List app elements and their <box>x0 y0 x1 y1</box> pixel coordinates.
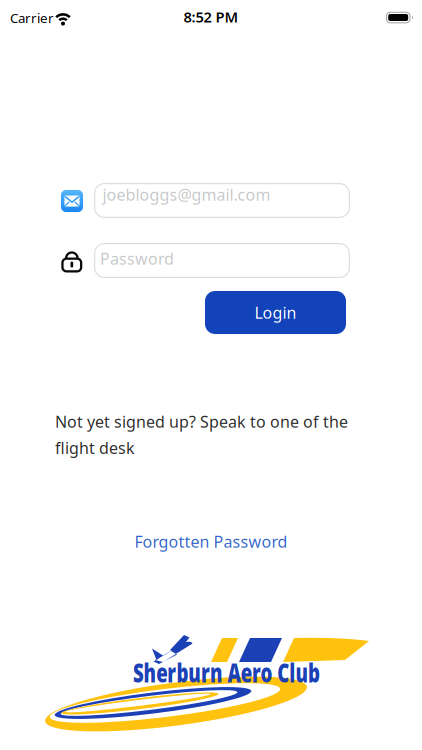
staticText: Sherburn Aero Club <box>93 654 360 690</box>
button[interactable]: Forgotten Password <box>134 531 287 552</box>
staticText: flight desk <box>55 437 135 458</box>
staticText: Carrier <box>10 9 54 27</box>
staticText: Not yet signed up? Speak to one of the <box>55 411 348 432</box>
button[interactable]: Login <box>205 291 346 334</box>
staticText: Password <box>100 248 174 269</box>
staticText: 8:52 PM <box>183 7 238 26</box>
staticText: joebloggs@gmail.com <box>102 184 270 205</box>
staticText: Login <box>254 302 296 323</box>
button[interactable]: Password <box>94 243 350 278</box>
staticText: Forgotten Password <box>134 531 287 552</box>
button[interactable]: Email address <box>94 183 350 218</box>
